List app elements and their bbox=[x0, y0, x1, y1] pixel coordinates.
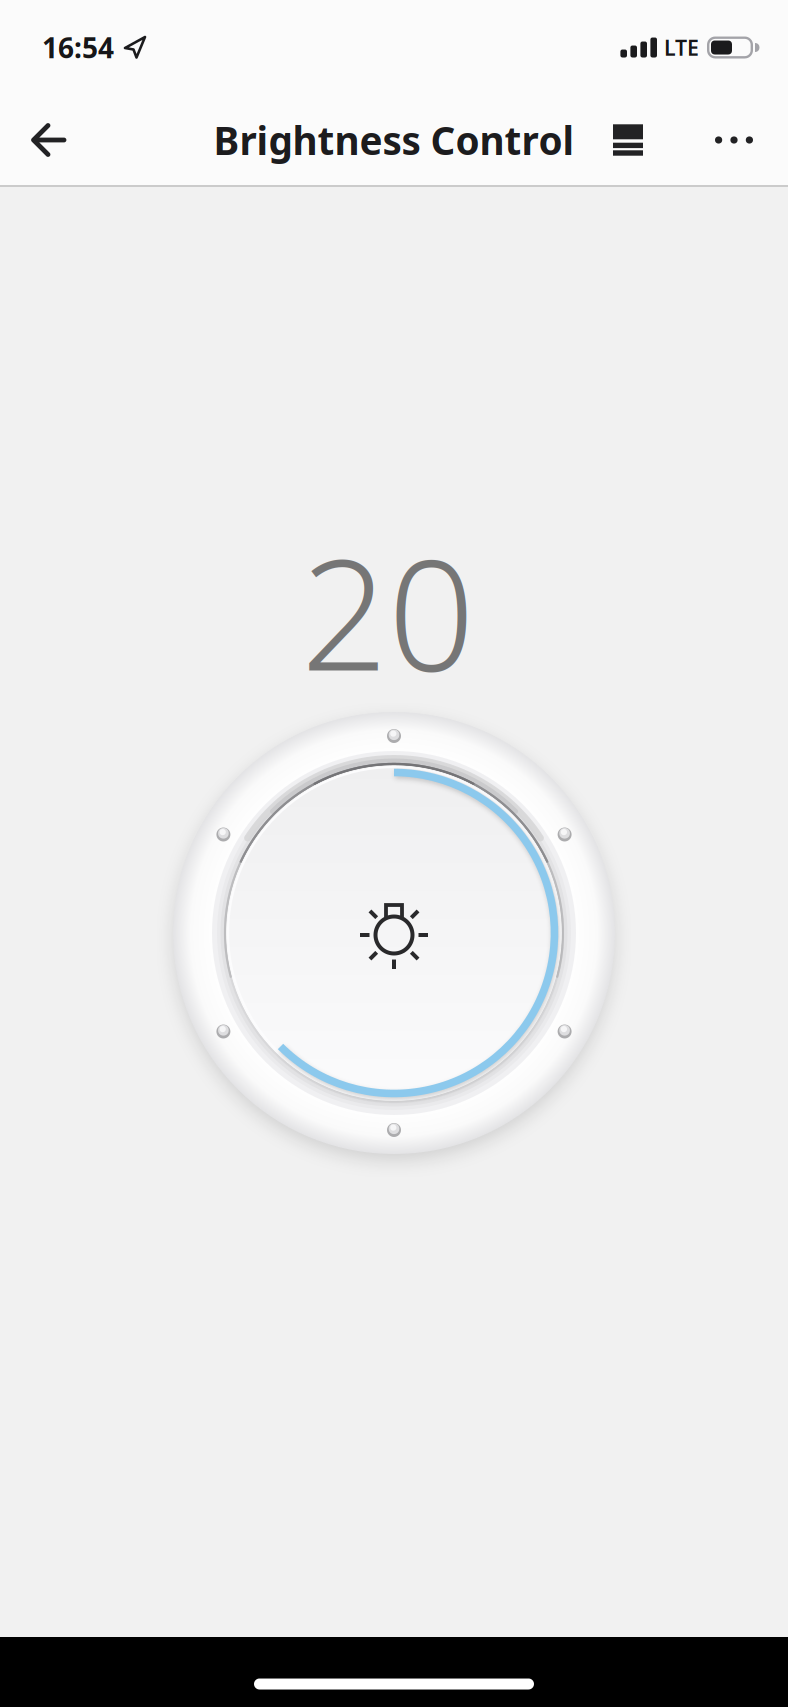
staticText: 20 bbox=[301, 511, 475, 712]
button[interactable]: Brightness dial bbox=[164, 703, 624, 1163]
button[interactable]: Back bbox=[0, 123, 85, 157]
button[interactable]: Schedule bbox=[593, 124, 679, 156]
button[interactable]: More bbox=[679, 136, 788, 144]
staticText: 16:54 bbox=[42, 29, 114, 66]
staticText: LTE bbox=[664, 33, 699, 62]
staticText: Brightness Control bbox=[213, 114, 574, 166]
